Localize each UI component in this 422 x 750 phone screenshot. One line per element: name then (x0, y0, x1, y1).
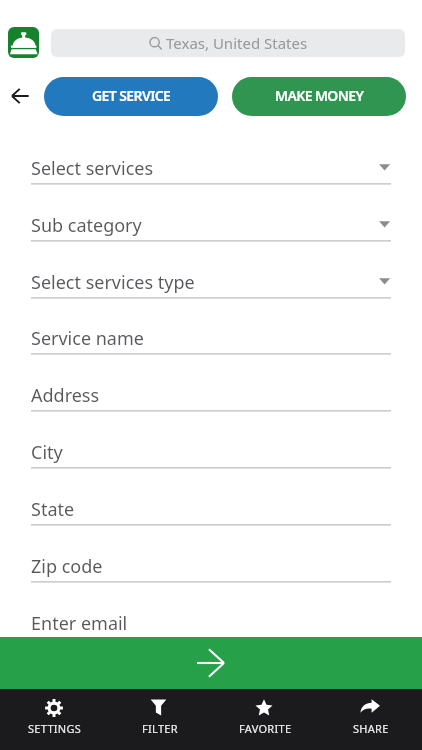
staticText: Address (31, 383, 100, 408)
staticText: City (31, 440, 63, 465)
staticText: MAKE MONEY (275, 86, 364, 105)
staticText: Sub category (31, 213, 142, 238)
staticText: Select services (31, 156, 154, 181)
button[interactable]: FAVORITE (210, 689, 316, 750)
button[interactable]: MAKE MONEY (232, 77, 406, 116)
staticText: FILTER (142, 721, 178, 736)
button[interactable]: State (0, 485, 422, 535)
staticText: Enter email (31, 611, 128, 636)
staticText: State (31, 497, 75, 522)
staticText: Zip code (31, 554, 103, 579)
button[interactable]: Select services (0, 144, 422, 194)
button[interactable]: Sub category (0, 201, 422, 251)
staticText: SHARE (353, 721, 389, 736)
button[interactable]: Select services type (0, 258, 422, 308)
button[interactable]: Next (0, 637, 422, 689)
button[interactable]: Back (6, 81, 36, 111)
staticText: Texas, United States (166, 33, 308, 53)
button[interactable]: FILTER (105, 689, 210, 750)
button[interactable]: Service name (0, 314, 422, 364)
staticText: SETTINGS (28, 721, 82, 736)
staticText: Select services type (31, 270, 195, 295)
button[interactable]: Enter email (0, 599, 422, 649)
button[interactable]: Zip code (0, 542, 422, 592)
button[interactable]: Address (0, 371, 422, 421)
staticText: GET SERVICE (92, 86, 171, 105)
button[interactable]: City (0, 428, 422, 478)
button[interactable]: Texas, United States (51, 29, 405, 57)
staticText: FAVORITE (239, 721, 292, 736)
button[interactable]: Home (8, 27, 39, 58)
button[interactable]: GET SERVICE (44, 77, 218, 116)
button[interactable]: SETTINGS (0, 689, 105, 750)
button[interactable]: SHARE (316, 689, 422, 750)
staticText: Service name (31, 326, 144, 351)
